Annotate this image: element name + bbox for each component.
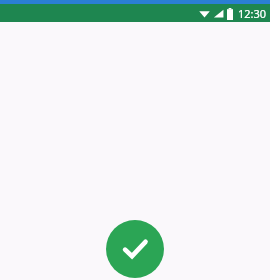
button[interactable]: Confirm <box>106 220 164 278</box>
staticText: 12:30 <box>237 6 266 21</box>
